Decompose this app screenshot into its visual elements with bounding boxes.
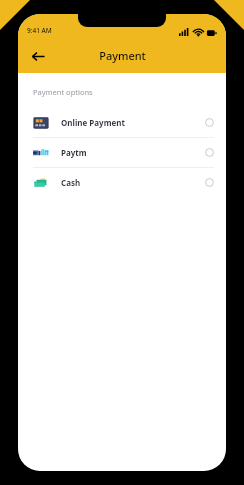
button[interactable]: Online Payment [18, 108, 226, 137]
staticText: 9:41 AM [27, 26, 52, 35]
button[interactable]: Cash [18, 168, 226, 197]
staticText: Paytm [61, 147, 87, 158]
staticText: Online Payment [61, 117, 125, 128]
staticText: Cash [61, 177, 81, 188]
button[interactable]: Paytm [18, 138, 226, 167]
staticText: Payment [99, 48, 146, 63]
button[interactable]: Back [26, 44, 50, 68]
staticText: Payment options [33, 87, 93, 97]
